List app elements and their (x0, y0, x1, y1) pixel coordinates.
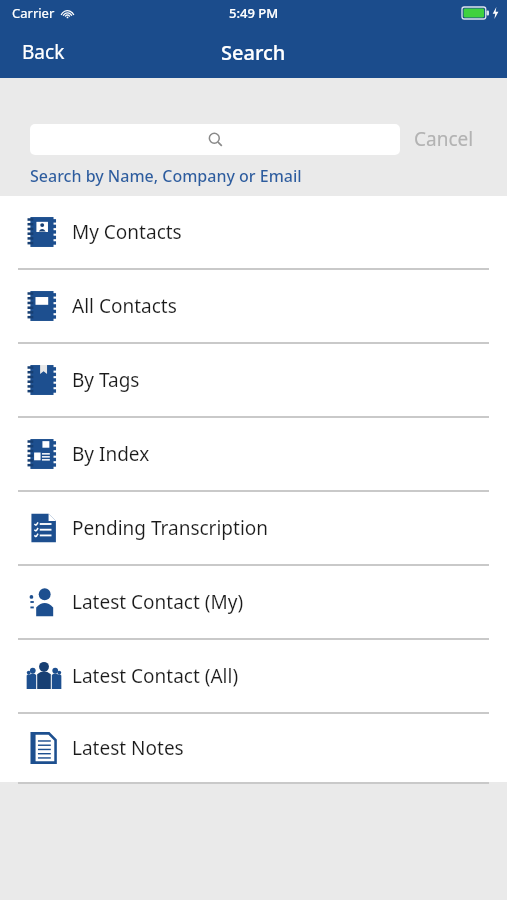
staticText: Search (221, 39, 286, 66)
button[interactable]: Latest Contact (All) (0, 640, 507, 712)
staticText: All Contacts (72, 293, 177, 319)
staticText: Latest Notes (72, 735, 184, 761)
staticText: Back (22, 39, 65, 65)
staticText: Cancel (414, 126, 474, 152)
button[interactable]: Search by Name, Company or Email (18, 162, 314, 190)
button[interactable]: My Contacts (0, 196, 507, 268)
button[interactable]: Latest Notes (0, 714, 507, 782)
staticText: 5:49 PM (229, 4, 279, 22)
button[interactable]: Pending Transcription (0, 492, 507, 564)
staticText: Pending Transcription (72, 515, 269, 541)
staticText: By Tags (72, 367, 140, 393)
staticText: My Contacts (72, 219, 182, 245)
staticText: Carrier (12, 4, 55, 22)
button[interactable] (30, 124, 400, 155)
button[interactable]: Back (0, 29, 87, 75)
staticText: By Index (72, 441, 150, 467)
staticText: Latest Contact (All) (72, 663, 239, 689)
staticText: Search by Name, Company or Email (30, 165, 302, 187)
button[interactable]: Latest Contact (My) (0, 566, 507, 638)
button[interactable]: Cancel (414, 120, 474, 158)
staticText: Latest Contact (My) (72, 589, 244, 615)
button[interactable]: By Index (0, 418, 507, 490)
button[interactable]: By Tags (0, 344, 507, 416)
button[interactable]: All Contacts (0, 270, 507, 342)
